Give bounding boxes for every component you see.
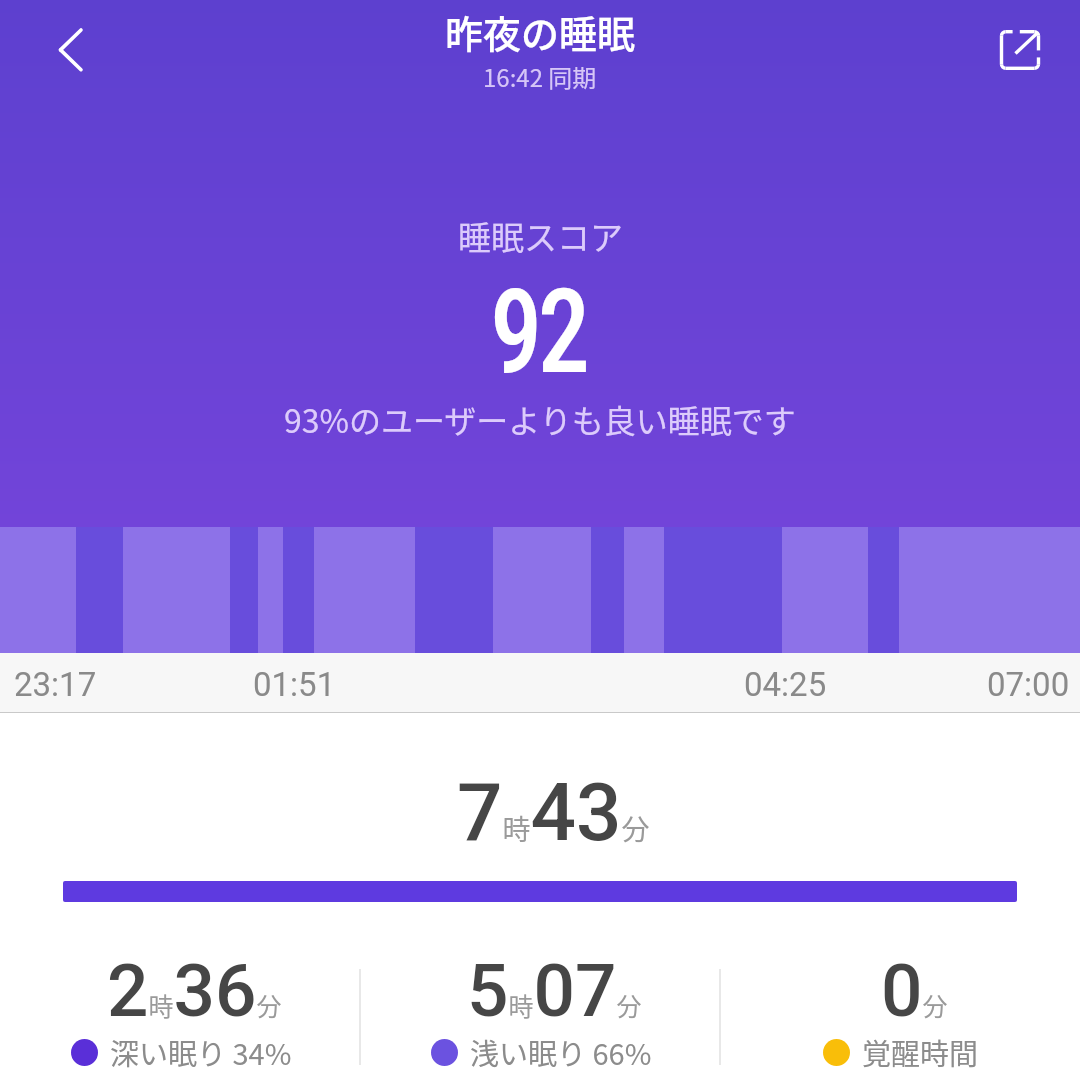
button[interactable]: 2時36分 (0, 948, 360, 1076)
staticText: 深い眠り 34% (110, 1031, 292, 1073)
staticText: 16:42 同期 (483, 59, 597, 94)
staticText: 7時43分 (457, 766, 650, 860)
button[interactable]: Back (22, 8, 106, 92)
button[interactable]: 5時07分 (360, 948, 720, 1076)
staticText: 睡眠スコア (458, 212, 623, 260)
staticText: 2時36分 (107, 948, 282, 1034)
staticText: 01:51 (253, 665, 336, 704)
staticText: 92 (492, 264, 588, 400)
staticText: 覚醒時間 (862, 1031, 979, 1073)
staticText: 5時07分 (467, 948, 642, 1034)
staticText: 23:17 (14, 665, 97, 704)
button[interactable]: 0分 (720, 948, 1080, 1076)
button[interactable]: Share (980, 10, 1060, 90)
staticText: 07:00 (987, 665, 1070, 704)
staticText: 93%のユーザーよりも良い睡眠です (284, 396, 796, 442)
staticText: 0分 (881, 948, 948, 1034)
staticText: 04:25 (744, 665, 827, 704)
staticText: 浅い眠り 66% (470, 1031, 652, 1073)
staticText: 昨夜の睡眠 (445, 4, 636, 59)
